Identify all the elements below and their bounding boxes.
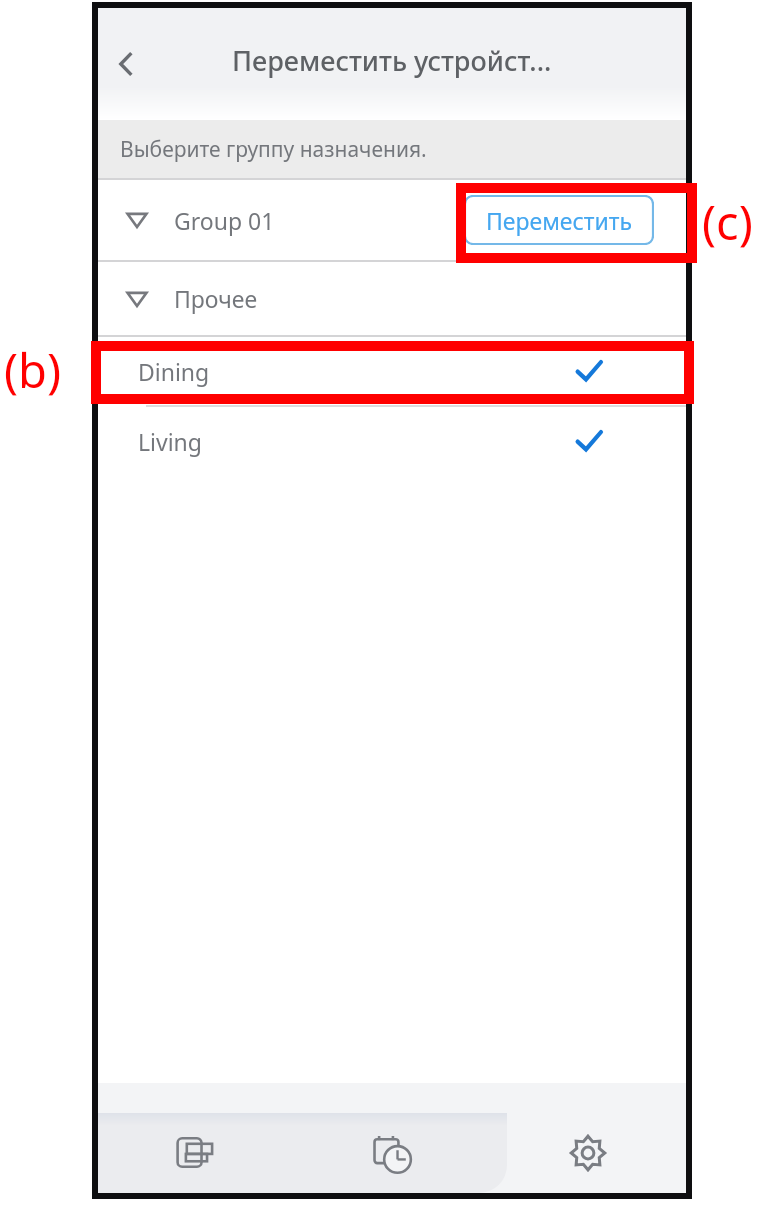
button[interactable]: Print <box>98 1113 294 1193</box>
staticText: Прочее <box>174 283 258 314</box>
staticText: Dining <box>138 356 210 387</box>
staticText: Переместить <box>486 205 633 236</box>
staticText: Living <box>138 426 202 457</box>
button[interactable]: Schedule <box>294 1113 490 1193</box>
button[interactable]: Living <box>98 407 686 475</box>
staticText: Выберите группу назначения. <box>120 135 427 164</box>
staticText: (c) <box>702 190 753 254</box>
staticText: (b) <box>4 338 62 402</box>
button[interactable]: Group 01 <box>98 180 686 260</box>
staticText: Переместить устройст... <box>232 42 552 79</box>
button[interactable]: Back <box>98 36 154 92</box>
staticText: Group 01 <box>174 205 275 236</box>
button[interactable]: Settings <box>490 1113 686 1193</box>
button[interactable]: Dining <box>98 337 686 405</box>
button[interactable]: Прочее <box>98 262 686 335</box>
button[interactable]: Переместить <box>464 195 654 245</box>
